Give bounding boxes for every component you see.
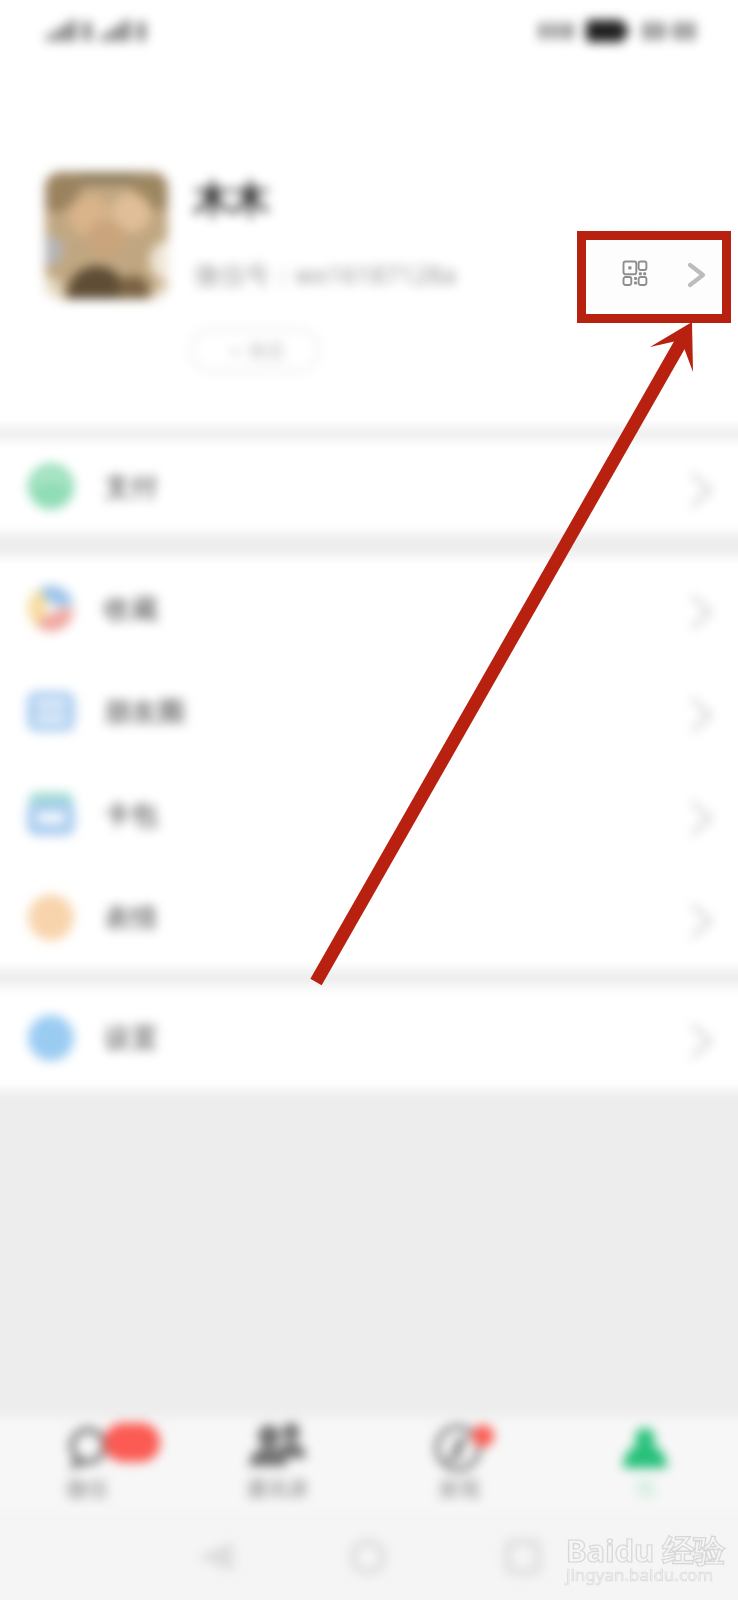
staticText: 支付 bbox=[104, 470, 158, 504]
staticText: 表情 bbox=[104, 901, 158, 935]
staticText: 发现 bbox=[438, 1476, 480, 1502]
button[interactable]: 微信 bbox=[0, 1417, 177, 1512]
staticText: 收藏 bbox=[104, 592, 158, 626]
button[interactable]: My QR code bbox=[606, 238, 712, 278]
button[interactable]: 朋友圈 bbox=[0, 660, 738, 763]
button[interactable]: 收藏 bbox=[0, 557, 738, 660]
staticText: 木木 bbox=[193, 176, 269, 224]
button[interactable]: 支付 bbox=[0, 440, 738, 533]
staticText: 通讯录 bbox=[246, 1476, 309, 1502]
staticText: 微信 bbox=[66, 1476, 108, 1502]
staticText: 朋友圈 bbox=[104, 695, 185, 729]
staticText: 卡包 bbox=[104, 798, 158, 832]
staticText: jingyan.baidu.com bbox=[566, 1563, 714, 1586]
staticText: 我 bbox=[635, 1476, 656, 1502]
button[interactable]: 表情 bbox=[0, 866, 738, 969]
staticText: ＋ 状态 bbox=[226, 338, 285, 363]
button[interactable]: 通讯录 bbox=[187, 1417, 367, 1512]
staticText: Baidu 经验 bbox=[566, 1529, 725, 1571]
button[interactable]: 我 bbox=[555, 1417, 735, 1512]
button[interactable]: 木木 bbox=[0, 66, 738, 427]
staticText: 微信号：wx16187128a bbox=[195, 257, 457, 291]
button[interactable]: 发现 bbox=[369, 1417, 549, 1512]
button[interactable]: 设置 bbox=[0, 986, 738, 1090]
button[interactable]: ＋ 状态 bbox=[190, 328, 320, 372]
staticText: 设置 bbox=[104, 1021, 158, 1055]
button[interactable]: 卡包 bbox=[0, 763, 738, 866]
